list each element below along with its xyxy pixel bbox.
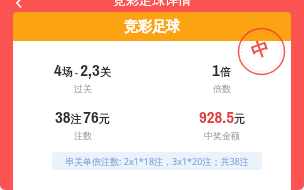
button[interactable]: Back [10,0,28,12]
staticText: 38注 76元 [55,105,110,128]
staticText: 4场 - 2,3关 [54,58,111,81]
staticText: 竞彩足球详情 [113,0,191,6]
staticText: 中 [248,36,273,64]
staticText: 中奖金额 [204,130,240,141]
staticText: 串关单倍注数: 2x1*18注，3x1*20注；共38注 [65,155,249,167]
staticText: 过关 [74,83,92,94]
staticText: 注数 [74,130,92,141]
staticText: 928.5元 [199,105,245,128]
staticText: 倍数 [213,83,231,94]
staticText: 竞彩足球 [124,18,180,36]
staticText: 1倍 [212,58,231,81]
